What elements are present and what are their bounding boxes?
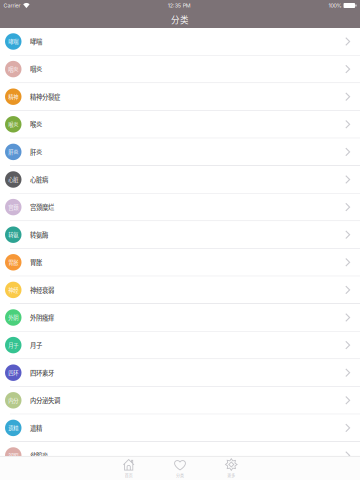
staticText: 转氨 — [8, 231, 18, 238]
staticText: 更多 — [227, 473, 235, 479]
staticText: 喉炎 — [8, 120, 18, 128]
button[interactable]: 四环 — [0, 359, 360, 387]
staticText: 四环 — [8, 369, 18, 376]
staticText: 外阴 — [8, 314, 18, 321]
staticText: 宫颈糜烂 — [30, 202, 54, 212]
staticText: 月子 — [8, 341, 18, 349]
staticText: 盆腔 — [8, 452, 18, 459]
button[interactable]: 哮喘 — [0, 28, 360, 56]
staticText: 盆腔炎 — [30, 451, 48, 460]
staticText: 心脏病 — [30, 175, 48, 184]
staticText: 胃胀 — [8, 258, 18, 266]
button[interactable]: 更多 — [206, 458, 257, 479]
staticText: 肝炎 — [8, 148, 18, 156]
button[interactable]: 内分 — [0, 387, 360, 414]
staticText: 哮喘 — [30, 37, 42, 46]
staticText: 12:35 PM — [168, 2, 191, 9]
button[interactable]: 肝炎 — [0, 138, 360, 166]
staticText: 心脏 — [8, 176, 18, 183]
button[interactable]: 分类 — [154, 458, 206, 479]
button[interactable]: 宫颈 — [0, 194, 360, 221]
staticText: 神经 — [8, 286, 18, 294]
staticText: 遗精 — [30, 423, 42, 432]
button[interactable]: 胃胀 — [0, 249, 360, 276]
staticText: 咽炎 — [8, 65, 18, 73]
staticText: Carrier — [3, 2, 20, 9]
staticText: 分类 — [171, 13, 189, 26]
button[interactable]: 月子 — [0, 332, 360, 359]
staticText: 100% — [328, 2, 341, 9]
staticText: 分类 — [176, 473, 184, 479]
button[interactable]: 咽炎 — [0, 56, 360, 83]
staticText: 咽炎 — [30, 64, 42, 74]
button[interactable]: 神经 — [0, 276, 360, 304]
staticText: 遗精 — [8, 424, 18, 432]
staticText: 转氨酶 — [30, 230, 48, 239]
button[interactable]: 遗精 — [0, 414, 360, 442]
staticText: 精神 — [8, 93, 18, 100]
button[interactable]: 首页 — [103, 458, 154, 479]
staticText: 内分 — [8, 396, 18, 404]
staticText: 月子 — [30, 340, 42, 350]
staticText: 神经衰弱 — [30, 285, 54, 294]
button[interactable]: 喉炎 — [0, 111, 360, 138]
staticText: 首页 — [125, 473, 133, 479]
button[interactable]: 转氨 — [0, 221, 360, 249]
button[interactable]: 外阴 — [0, 304, 360, 332]
staticText: 精神分裂症 — [30, 92, 60, 101]
staticText: 宫颈 — [8, 203, 18, 211]
button[interactable]: 盆腔 — [0, 442, 360, 470]
staticText: 外阴瘙痒 — [30, 313, 54, 322]
staticText: 哮喘 — [8, 38, 18, 45]
staticText: 四环素牙 — [30, 368, 54, 377]
staticText: 内分泌失调 — [30, 396, 60, 405]
button[interactable]: 心脏 — [0, 166, 360, 194]
staticText: 胃胀 — [30, 258, 42, 267]
button[interactable]: 精神 — [0, 83, 360, 111]
staticText: 喉炎 — [30, 120, 42, 129]
staticText: 肝炎 — [30, 147, 42, 156]
